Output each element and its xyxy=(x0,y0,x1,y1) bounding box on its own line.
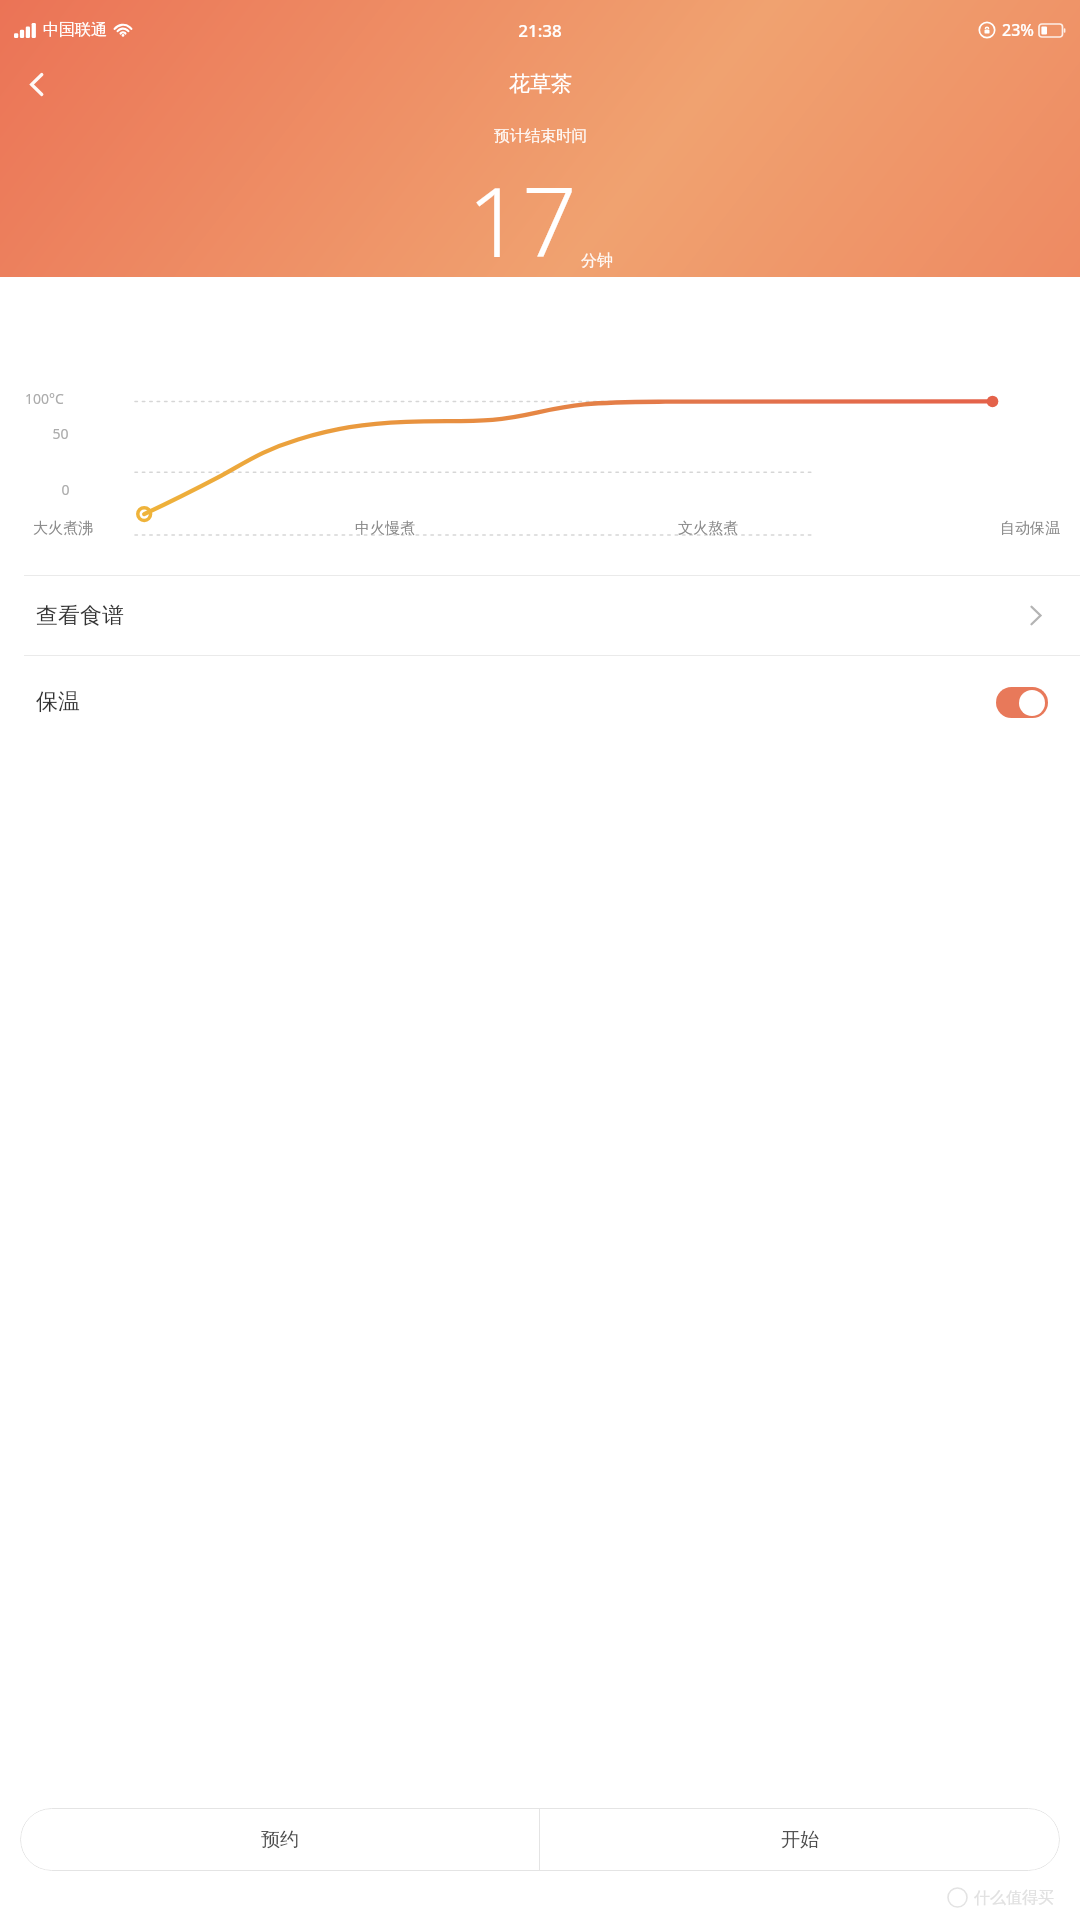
staticText: 自动保温 xyxy=(1000,519,1060,538)
staticText: 分钟 xyxy=(581,251,613,271)
button[interactable]: 保温 xyxy=(0,656,1080,748)
staticText: 100°C xyxy=(25,389,64,408)
button[interactable]: 预约 xyxy=(20,1808,539,1871)
staticText: 中国联通 xyxy=(43,20,107,40)
staticText: 21:38 xyxy=(518,19,562,42)
staticText: 0 xyxy=(61,480,70,499)
staticText: 开始 xyxy=(781,1828,819,1852)
staticText: 中火慢煮 xyxy=(355,519,415,538)
staticText: 文火熬煮 xyxy=(678,519,738,538)
staticText: 预约 xyxy=(261,1828,299,1852)
staticText: 17 xyxy=(467,154,577,285)
button[interactable]: Back xyxy=(8,60,66,108)
staticText: 花草茶 xyxy=(509,71,572,97)
staticText: 查看食谱 xyxy=(36,602,124,630)
staticText: 50 xyxy=(52,424,69,443)
button[interactable]: 查看食谱 xyxy=(0,576,1080,655)
staticText: 什么值得买 xyxy=(974,1888,1054,1908)
staticText: 保温 xyxy=(36,688,80,716)
staticText: 大火煮沸 xyxy=(33,519,93,538)
staticText: 23% xyxy=(1002,19,1034,41)
button[interactable]: 开始 xyxy=(540,1808,1060,1871)
staticText: 预计结束时间 xyxy=(494,126,587,146)
